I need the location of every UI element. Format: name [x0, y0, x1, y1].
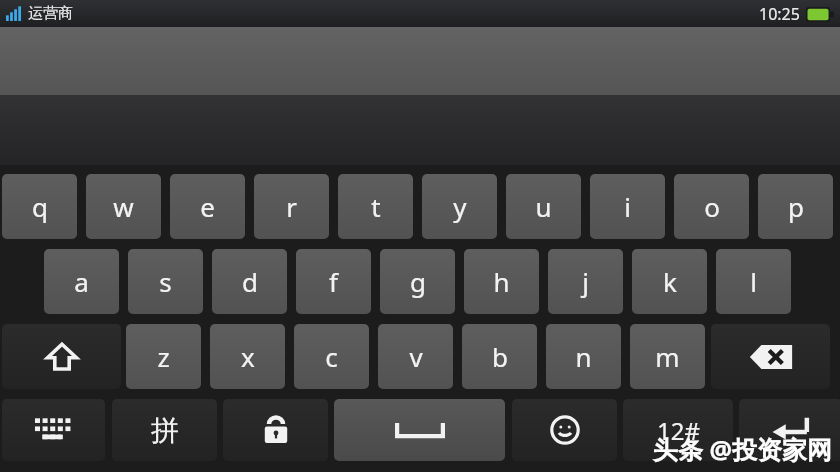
- button[interactable]: p: [758, 174, 833, 239]
- button[interactable]: y: [422, 174, 497, 239]
- staticText: o: [704, 189, 720, 224]
- staticText: k: [663, 264, 677, 299]
- staticText: x: [241, 339, 255, 374]
- button[interactable]: t: [338, 174, 413, 239]
- button[interactable]: m: [630, 324, 705, 389]
- staticText: l: [750, 264, 757, 299]
- staticText: r: [286, 189, 297, 224]
- staticText: q: [32, 189, 48, 224]
- staticText: p: [788, 189, 804, 224]
- button[interactable]: f: [296, 249, 371, 314]
- button[interactable]: l: [716, 249, 791, 314]
- staticText: v: [409, 339, 423, 374]
- button[interactable]: Backspace: [711, 324, 830, 389]
- staticText: e: [200, 189, 215, 224]
- button[interactable]: x: [210, 324, 285, 389]
- staticText: w: [113, 189, 134, 224]
- button[interactable]: Space: [334, 399, 505, 461]
- button[interactable]: q: [2, 174, 77, 239]
- button[interactable]: r: [254, 174, 329, 239]
- button[interactable]: Emoji: [512, 399, 617, 461]
- staticText: h: [493, 264, 510, 299]
- staticText: 12#: [657, 414, 700, 447]
- staticText: a: [74, 264, 89, 299]
- staticText: d: [242, 264, 258, 299]
- staticText: j: [582, 264, 589, 299]
- button[interactable]: j: [548, 249, 623, 314]
- staticText: b: [492, 339, 508, 374]
- button[interactable]: o: [674, 174, 749, 239]
- button[interactable]: 12#: [623, 399, 733, 461]
- staticText: s: [159, 264, 172, 299]
- button[interactable]: n: [546, 324, 621, 389]
- button[interactable]: Lock: [223, 399, 328, 461]
- staticText: m: [655, 339, 680, 374]
- staticText: 10:25: [759, 3, 800, 25]
- staticText: t: [371, 189, 381, 224]
- staticText: n: [575, 339, 592, 374]
- button[interactable]: h: [464, 249, 539, 314]
- button[interactable]: 拼: [112, 399, 217, 461]
- button[interactable]: c: [294, 324, 369, 389]
- button[interactable]: k: [632, 249, 707, 314]
- button[interactable]: z: [126, 324, 201, 389]
- staticText: 拼: [151, 413, 179, 448]
- button[interactable]: Shift: [2, 324, 121, 389]
- staticText: y: [453, 189, 467, 224]
- staticText: i: [624, 189, 631, 224]
- button[interactable]: b: [462, 324, 537, 389]
- button[interactable]: u: [506, 174, 581, 239]
- staticText: 头条 @投资家网: [653, 432, 832, 466]
- staticText: c: [325, 339, 338, 374]
- staticText: g: [410, 264, 426, 299]
- staticText: f: [329, 264, 338, 299]
- button[interactable]: Switch keyboard: [2, 399, 105, 461]
- button[interactable]: e: [170, 174, 245, 239]
- button[interactable]: v: [378, 324, 453, 389]
- staticText: z: [157, 339, 170, 374]
- button[interactable]: g: [380, 249, 455, 314]
- staticText: 运营商: [28, 4, 73, 23]
- button[interactable]: a: [44, 249, 119, 314]
- button[interactable]: w: [86, 174, 161, 239]
- staticText: u: [535, 189, 552, 224]
- button[interactable]: s: [128, 249, 203, 314]
- button[interactable]: d: [212, 249, 287, 314]
- button[interactable]: i: [590, 174, 665, 239]
- button[interactable]: Enter: [739, 399, 840, 461]
